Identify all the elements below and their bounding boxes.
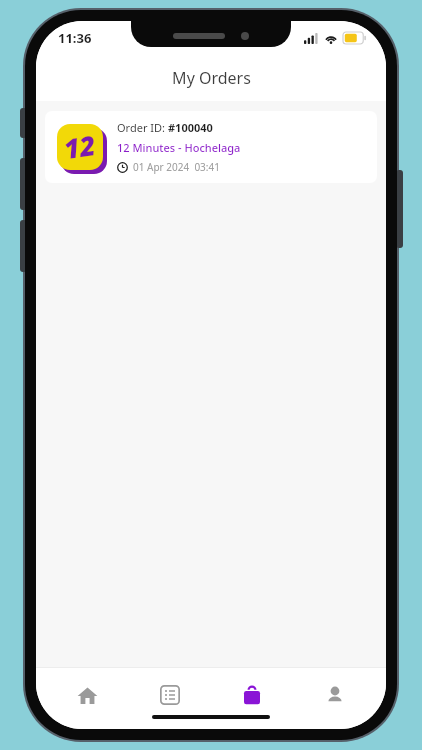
button[interactable]: Orders — [221, 673, 283, 717]
staticText: 12 Minutes - Hochelaga — [117, 140, 241, 155]
button[interactable]: Profile — [304, 673, 366, 717]
staticText: 12 — [61, 126, 98, 167]
button[interactable]: Catalog — [139, 673, 201, 717]
staticText: My Orders — [172, 67, 251, 89]
button[interactable]: 12 — [45, 111, 377, 183]
button[interactable]: Home — [56, 673, 118, 717]
staticText: #100040 — [168, 120, 213, 135]
staticText: 11:36 — [58, 29, 92, 47]
staticText: 01 Apr 2024 03:41 — [133, 160, 220, 174]
staticText: Order ID: — [117, 120, 168, 135]
